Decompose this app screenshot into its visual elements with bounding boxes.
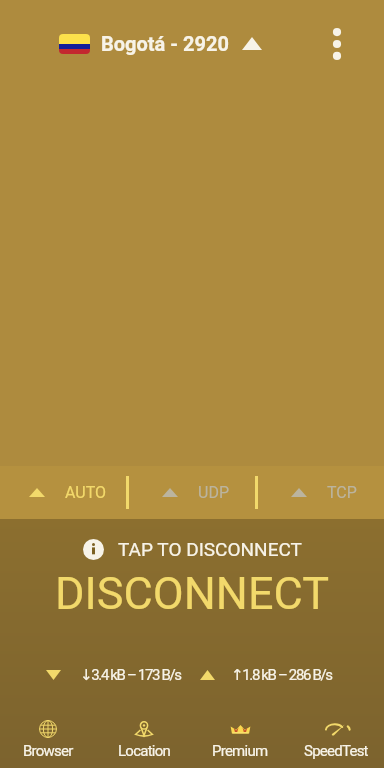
button[interactable]: Premium [192,719,288,768]
staticText: Location [118,742,171,760]
staticText: UDP [198,483,229,502]
button[interactable]: AUTO [0,466,128,519]
button[interactable]: UDP [128,466,256,519]
button[interactable]: Location [96,719,192,768]
staticText: TCP [327,483,357,502]
staticText: TAP TO DISCONNECT [118,538,302,560]
button[interactable]: TAP TO DISCONNECT [0,535,384,563]
staticText: SpeedTest [304,742,368,760]
staticText: DISCONNECT [55,567,330,620]
staticText: Premium [212,742,268,760]
button[interactable]: TCP [256,466,384,519]
staticText: AUTO [65,483,107,502]
staticText: ↓3.4 kB – 173 B/s [80,666,181,684]
button[interactable]: SpeedTest [288,719,384,768]
staticText: Bogotá - 2920 [101,32,229,55]
staticText: Browser [23,742,73,760]
staticText: ↑1.8 kB – 286 B/s [231,666,332,684]
button[interactable]: Bogotá - 2920 [59,32,262,55]
button[interactable]: More options [313,20,361,68]
button[interactable]: Browser [0,719,96,768]
button[interactable]: DISCONNECT [0,563,384,624]
